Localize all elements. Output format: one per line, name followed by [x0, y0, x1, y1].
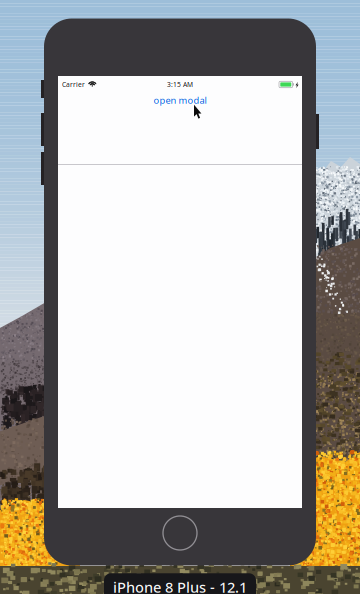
staticText: open modal [153, 94, 206, 106]
staticText: iPhone 8 Plus - 12.1 [113, 577, 247, 594]
staticText: Carrier [62, 80, 85, 89]
button[interactable]: open modal [58, 93, 302, 112]
staticText: 3:15 AM [167, 80, 193, 89]
